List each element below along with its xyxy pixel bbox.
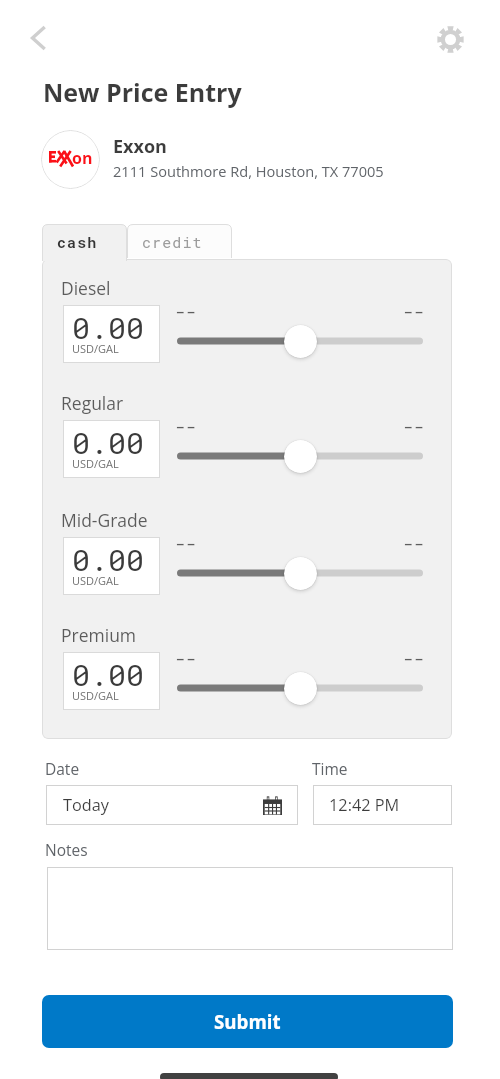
- staticText: --: [403, 299, 425, 323]
- staticText: 0.00: [72, 655, 145, 695]
- staticText: 2111 Southmore Rd, Houston, TX 77005: [113, 161, 384, 181]
- staticText: Exxon: [113, 134, 167, 159]
- button[interactable]: credit: [127, 224, 232, 258]
- button[interactable]: 0.00: [63, 652, 160, 710]
- button[interactable]: [177, 438, 423, 474]
- staticText: 0.00: [72, 308, 145, 348]
- staticText: --: [403, 414, 425, 438]
- staticText: Premium: [61, 623, 137, 647]
- button[interactable]: [177, 323, 423, 359]
- button[interactable]: [177, 670, 423, 706]
- staticText: Date: [45, 758, 80, 779]
- staticText: --: [403, 646, 425, 670]
- staticText: credit: [142, 232, 203, 252]
- staticText: 12:42 PM: [329, 794, 400, 816]
- staticText: USD/GAL: [72, 341, 119, 356]
- staticText: 0.00: [72, 423, 145, 463]
- staticText: Regular: [61, 391, 124, 415]
- staticText: --: [403, 531, 425, 555]
- staticText: New Price Entry: [43, 75, 242, 109]
- button[interactable]: 0.00: [63, 537, 160, 595]
- button[interactable]: 0.00: [63, 305, 160, 363]
- staticText: USD/GAL: [72, 688, 119, 703]
- button[interactable]: cash: [42, 224, 127, 261]
- staticText: --: [175, 414, 197, 438]
- button[interactable]: Today: [46, 785, 298, 825]
- staticText: Notes: [45, 839, 88, 860]
- button[interactable]: [177, 555, 423, 591]
- staticText: on: [72, 147, 93, 169]
- staticText: 0.00: [72, 540, 145, 580]
- button[interactable]: 12:42 PM: [313, 785, 452, 825]
- button[interactable]: [47, 867, 453, 950]
- button[interactable]: 0.00: [63, 420, 160, 478]
- staticText: Mid-Grade: [61, 508, 148, 532]
- staticText: --: [175, 299, 197, 323]
- staticText: USD/GAL: [72, 573, 119, 588]
- staticText: Submit: [214, 1009, 281, 1034]
- staticText: USD/GAL: [72, 456, 119, 471]
- staticText: --: [175, 646, 197, 670]
- button[interactable]: Settings: [428, 17, 472, 61]
- staticText: cash: [57, 232, 98, 252]
- button[interactable]: Submit: [42, 995, 453, 1048]
- staticText: Diesel: [61, 276, 111, 300]
- button[interactable]: Back: [17, 16, 61, 60]
- staticText: --: [175, 531, 197, 555]
- staticText: Today: [63, 794, 109, 816]
- staticText: Time: [312, 758, 348, 779]
